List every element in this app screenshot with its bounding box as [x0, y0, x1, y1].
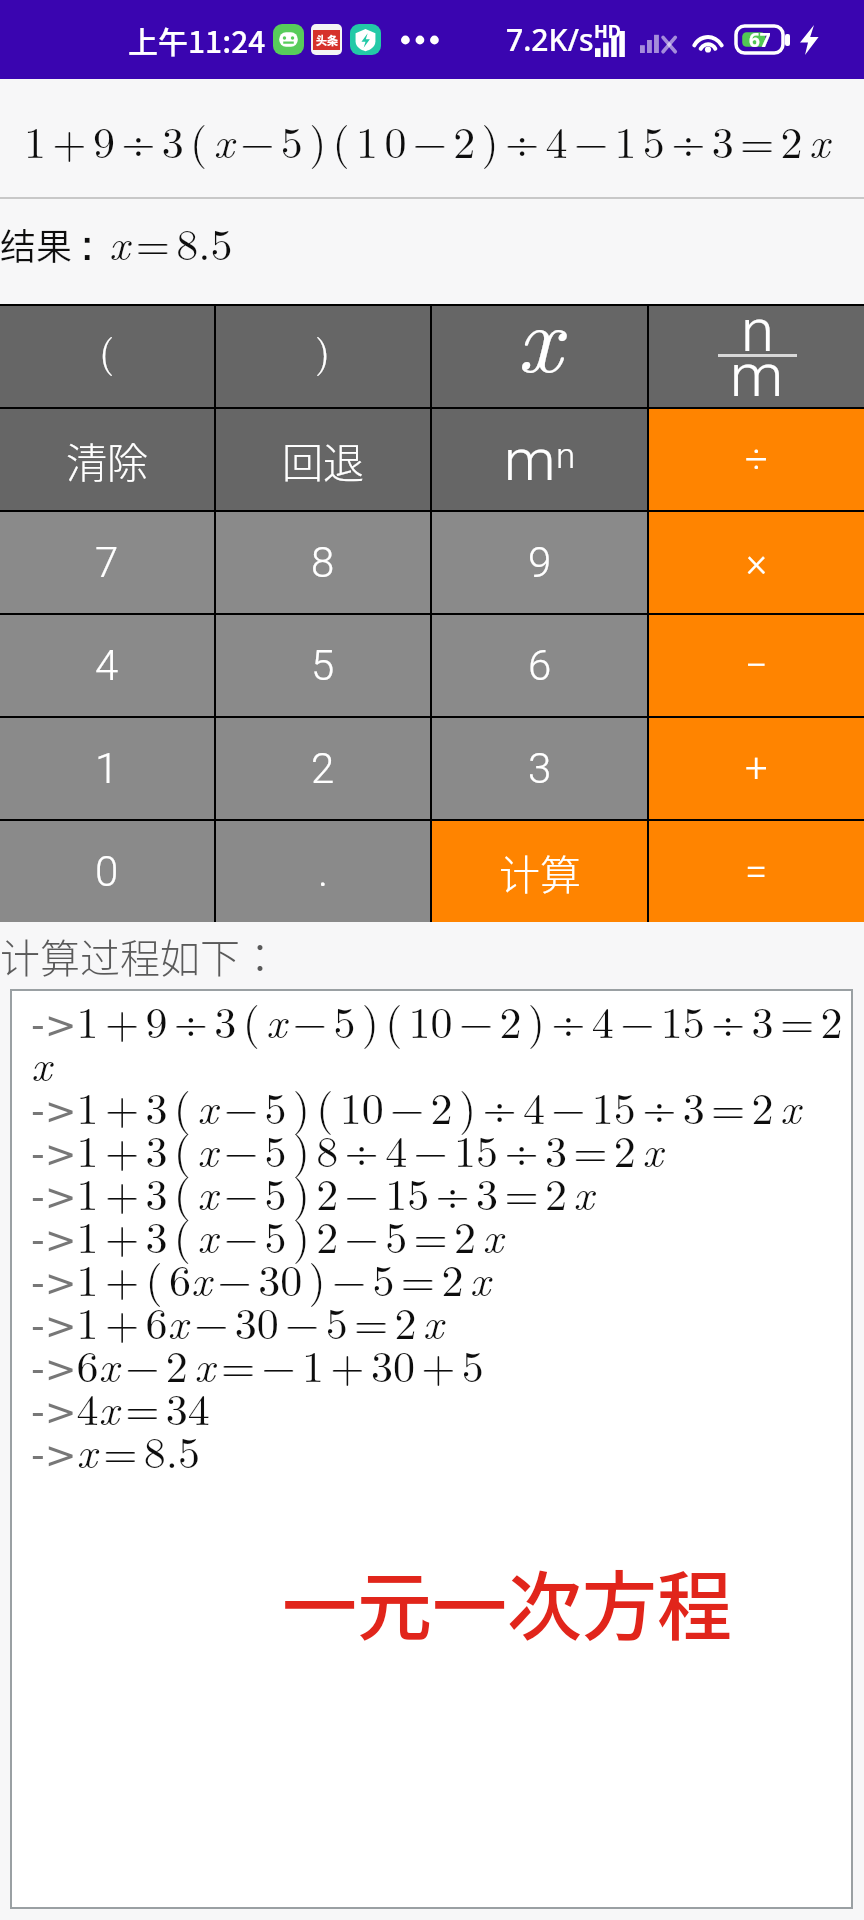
- staticText: 4: [95, 641, 119, 690]
- staticText: ：x = 8.5: [65, 210, 233, 273]
- button[interactable]: 6: [432, 615, 647, 716]
- button[interactable]: 2: [216, 718, 430, 819]
- staticText: 67: [749, 27, 771, 53]
- button[interactable]: Plus: [649, 718, 864, 819]
- staticText: m: [504, 426, 556, 494]
- button[interactable]: Minus: [649, 615, 864, 716]
- staticText: 清除: [66, 430, 148, 489]
- button[interactable]: 清除: [0, 409, 214, 510]
- staticText: 2: [311, 744, 335, 793]
- button[interactable]: Divide: [649, 409, 864, 510]
- staticText: 5: [311, 641, 335, 690]
- button[interactable]: 8: [216, 512, 430, 613]
- button[interactable]: 5: [216, 615, 430, 716]
- staticText: 上午11:24: [128, 18, 266, 61]
- staticText: 9: [528, 538, 552, 587]
- staticText: 6: [528, 641, 552, 690]
- button[interactable]: 0: [0, 821, 214, 922]
- staticText: 1: [95, 744, 119, 793]
- staticText: 计算: [499, 842, 581, 901]
- staticText: 结果: [0, 218, 73, 270]
- staticText: m: [730, 340, 784, 410]
- staticText: =: [745, 848, 768, 895]
- button[interactable]: ): [216, 306, 430, 407]
- button[interactable]: 3: [432, 718, 647, 819]
- button[interactable]: Fraction: [649, 306, 864, 407]
- staticText: x: [517, 264, 562, 400]
- button[interactable]: (: [0, 306, 214, 407]
- staticText: 0: [95, 847, 119, 896]
- staticText: 头条: [316, 32, 338, 48]
- button[interactable]: 1: [0, 718, 214, 819]
- staticText: HD: [594, 19, 621, 44]
- staticText: 回退: [282, 430, 364, 489]
- staticText: −: [745, 642, 768, 689]
- staticText: 一元一次方程: [31, 1547, 732, 1656]
- staticText: ): [315, 322, 331, 377]
- staticText: (: [99, 322, 115, 377]
- staticText: n: [741, 295, 774, 365]
- staticText: ->1 + 9 ÷ 3 ( x − 5 ) ( 10 − 2 ) ÷ 4 − 1…: [31, 1004, 843, 1477]
- staticText: .: [318, 847, 329, 896]
- button[interactable]: Multiply: [649, 512, 864, 613]
- staticText: ×: [746, 539, 767, 586]
- button[interactable]: Variable x: [432, 306, 647, 407]
- button[interactable]: 回退: [216, 409, 430, 510]
- staticText: +: [745, 745, 768, 792]
- button[interactable]: 计算: [432, 821, 647, 922]
- button[interactable]: 9: [432, 512, 647, 613]
- button[interactable]: Power: [432, 409, 647, 510]
- staticText: 3: [528, 744, 552, 793]
- staticText: 7: [95, 538, 119, 587]
- staticText: ÷: [745, 436, 768, 483]
- staticText: 计算过程如下：: [0, 927, 280, 985]
- button[interactable]: Equals: [649, 821, 864, 922]
- button[interactable]: 4: [0, 615, 214, 716]
- staticText: 1 + 9 ÷ 3 ( x − 5 ) ( 1 0 − 2 ) ÷ 4 − 1 …: [24, 108, 830, 170]
- staticText: 7.2K/s: [506, 19, 594, 60]
- staticText: n: [556, 436, 576, 477]
- staticText: 8: [311, 538, 335, 587]
- button[interactable]: 7: [0, 512, 214, 613]
